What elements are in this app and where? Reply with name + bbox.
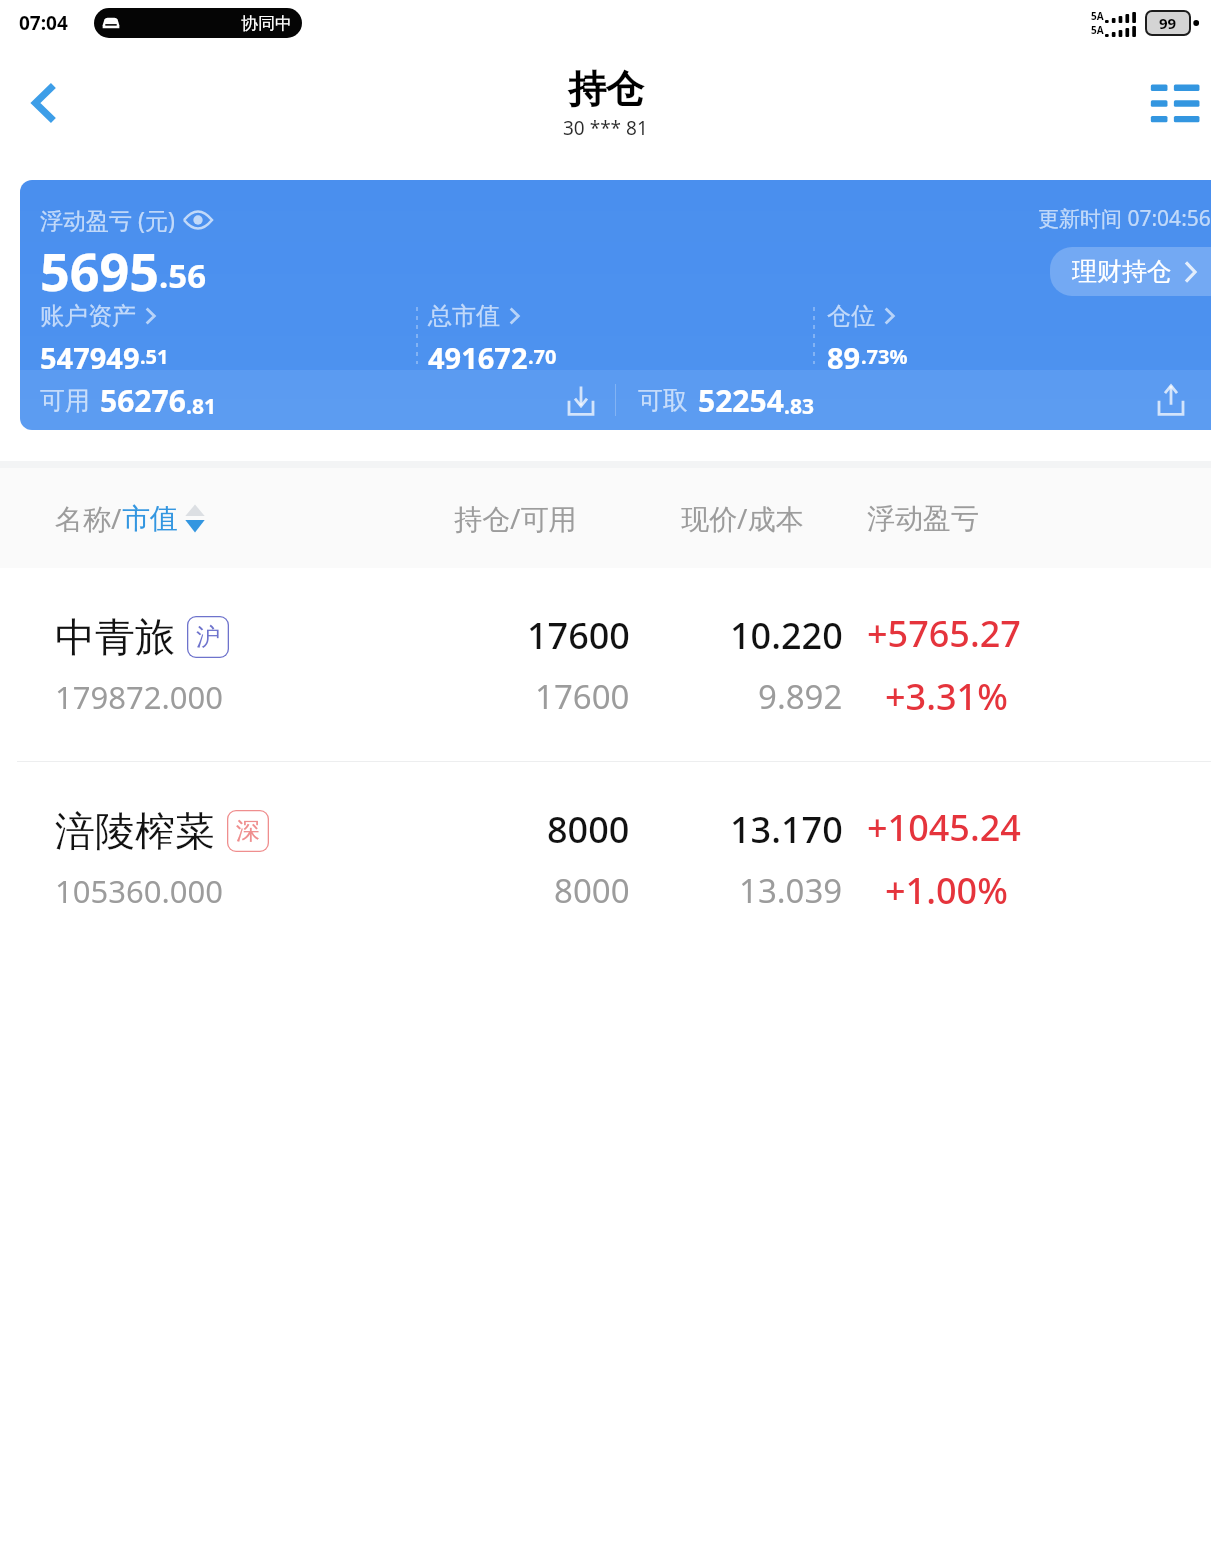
staticText: .51 xyxy=(140,343,169,370)
button[interactable]: Toggle visibility xyxy=(183,205,213,235)
staticText: +1.00% xyxy=(885,866,1008,915)
staticText: 浮动盈亏 xyxy=(867,501,979,536)
staticText: 市值 xyxy=(122,501,178,536)
staticText: 17600 xyxy=(527,611,630,660)
button[interactable]: 涪陵榨菜 xyxy=(0,762,1211,955)
staticText: 理财持仓 xyxy=(1072,256,1172,287)
button[interactable]: More options xyxy=(1135,65,1211,141)
staticText: 可用 xyxy=(40,385,90,416)
staticText: 17600 xyxy=(535,674,630,719)
staticText: 8000 xyxy=(554,868,630,913)
staticText: 105360.000 xyxy=(55,870,223,912)
staticText: 8000 xyxy=(547,805,630,854)
button[interactable]: 可用 xyxy=(20,370,615,430)
staticText: 5695 xyxy=(40,235,159,301)
staticText: 13.170 xyxy=(730,805,843,854)
staticText: +5765.27 xyxy=(867,609,1021,658)
button[interactable]: Withdraw xyxy=(1145,374,1197,426)
staticText: 52254 xyxy=(698,380,784,421)
button[interactable]: 总市值 xyxy=(418,301,814,370)
staticText: 现价/成本 xyxy=(681,499,804,537)
button[interactable]: 理财持仓 xyxy=(1050,247,1211,296)
staticText: 持仓 xyxy=(568,65,644,113)
button[interactable]: 名称/ xyxy=(0,468,400,568)
staticText: 深 xyxy=(236,816,260,846)
button[interactable]: 浮动盈亏 xyxy=(855,468,1211,568)
staticText: 仓位 xyxy=(827,301,875,331)
staticText: .73% xyxy=(861,343,908,370)
staticText: 账户资产 xyxy=(40,301,136,331)
staticText: 浮动盈亏 (元) xyxy=(40,204,175,235)
staticText: +3.31% xyxy=(885,672,1008,721)
staticText: 总市值 xyxy=(428,301,500,331)
button[interactable]: 现价/成本 xyxy=(630,468,855,568)
staticText: 5A xyxy=(1091,23,1104,37)
button[interactable]: 持仓/可用 xyxy=(400,468,630,568)
button[interactable]: Deposit xyxy=(555,374,607,426)
staticText: 547949 xyxy=(40,338,140,370)
staticText: .70 xyxy=(528,343,557,370)
staticText: 491672 xyxy=(428,338,528,370)
staticText: .81 xyxy=(186,392,216,421)
staticText: 5A xyxy=(1091,9,1104,23)
staticText: 更新时间 07:04:56 xyxy=(1038,204,1211,233)
staticText: 可取 xyxy=(638,385,688,416)
staticText: 99 xyxy=(1159,13,1177,33)
staticText: 沪 xyxy=(196,622,220,652)
staticText: +1045.24 xyxy=(867,803,1021,852)
staticText: 涪陵榨菜 xyxy=(55,806,215,856)
staticText: 中青旅 xyxy=(55,612,175,662)
staticText: 56276 xyxy=(100,380,186,421)
staticText: .56 xyxy=(159,253,207,298)
staticText: 10.220 xyxy=(730,611,843,660)
staticText: 名称/ xyxy=(55,499,122,537)
staticText: 9.892 xyxy=(758,674,843,719)
staticText: 30 *** 81 xyxy=(563,115,648,141)
button[interactable]: 账户资产 xyxy=(20,301,417,370)
staticText: 持仓/可用 xyxy=(454,499,577,537)
button[interactable]: Back xyxy=(10,68,80,138)
button[interactable]: 可取 xyxy=(616,370,1211,430)
staticText: 89 xyxy=(827,338,861,370)
button[interactable]: 中青旅 xyxy=(0,568,1211,761)
staticText: 协同中 xyxy=(241,13,292,34)
button[interactable]: 仓位 xyxy=(815,301,1211,370)
staticText: .83 xyxy=(784,392,814,421)
staticText: 07:04 xyxy=(19,10,68,36)
staticText: 179872.000 xyxy=(55,676,223,718)
staticText: 13.039 xyxy=(739,868,843,913)
